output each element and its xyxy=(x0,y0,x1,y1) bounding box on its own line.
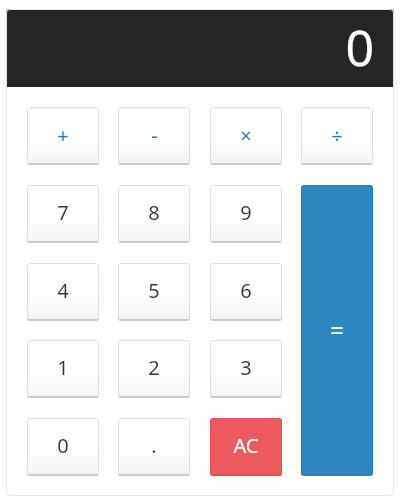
staticText: = xyxy=(330,313,344,346)
staticText: + xyxy=(57,122,69,149)
button[interactable]: Minus xyxy=(118,107,190,165)
staticText: × xyxy=(240,122,252,149)
staticText: 7 xyxy=(57,199,69,226)
button[interactable]: 3 xyxy=(210,340,282,398)
button[interactable]: AC xyxy=(210,418,282,476)
staticText: 1 xyxy=(57,354,69,381)
button[interactable]: 6 xyxy=(210,263,282,321)
button[interactable]: Plus xyxy=(27,107,99,165)
staticText: 4 xyxy=(57,277,69,304)
button[interactable]: 8 xyxy=(118,185,190,243)
staticText: 2 xyxy=(148,354,160,381)
staticText: . xyxy=(151,432,157,459)
staticText: - xyxy=(151,122,158,149)
staticText: 6 xyxy=(240,277,252,304)
button[interactable]: 0 xyxy=(27,418,99,476)
staticText: 8 xyxy=(148,199,160,226)
staticText: 5 xyxy=(148,277,160,304)
button[interactable]: 4 xyxy=(27,263,99,321)
button[interactable]: Multiply xyxy=(210,107,282,165)
button[interactable]: 9 xyxy=(210,185,282,243)
button[interactable]: 2 xyxy=(118,340,190,398)
button[interactable]: = xyxy=(301,185,373,476)
staticText: ÷ xyxy=(331,122,343,149)
button[interactable]: . xyxy=(118,418,190,476)
button[interactable]: 1 xyxy=(27,340,99,398)
button[interactable]: 7 xyxy=(27,185,99,243)
button[interactable]: Divide xyxy=(301,107,373,165)
staticText: 0 xyxy=(345,13,374,81)
staticText: AC xyxy=(233,432,259,459)
staticText: 3 xyxy=(240,354,252,381)
staticText: 0 xyxy=(57,432,69,459)
staticText: 9 xyxy=(240,199,252,226)
button[interactable]: 5 xyxy=(118,263,190,321)
